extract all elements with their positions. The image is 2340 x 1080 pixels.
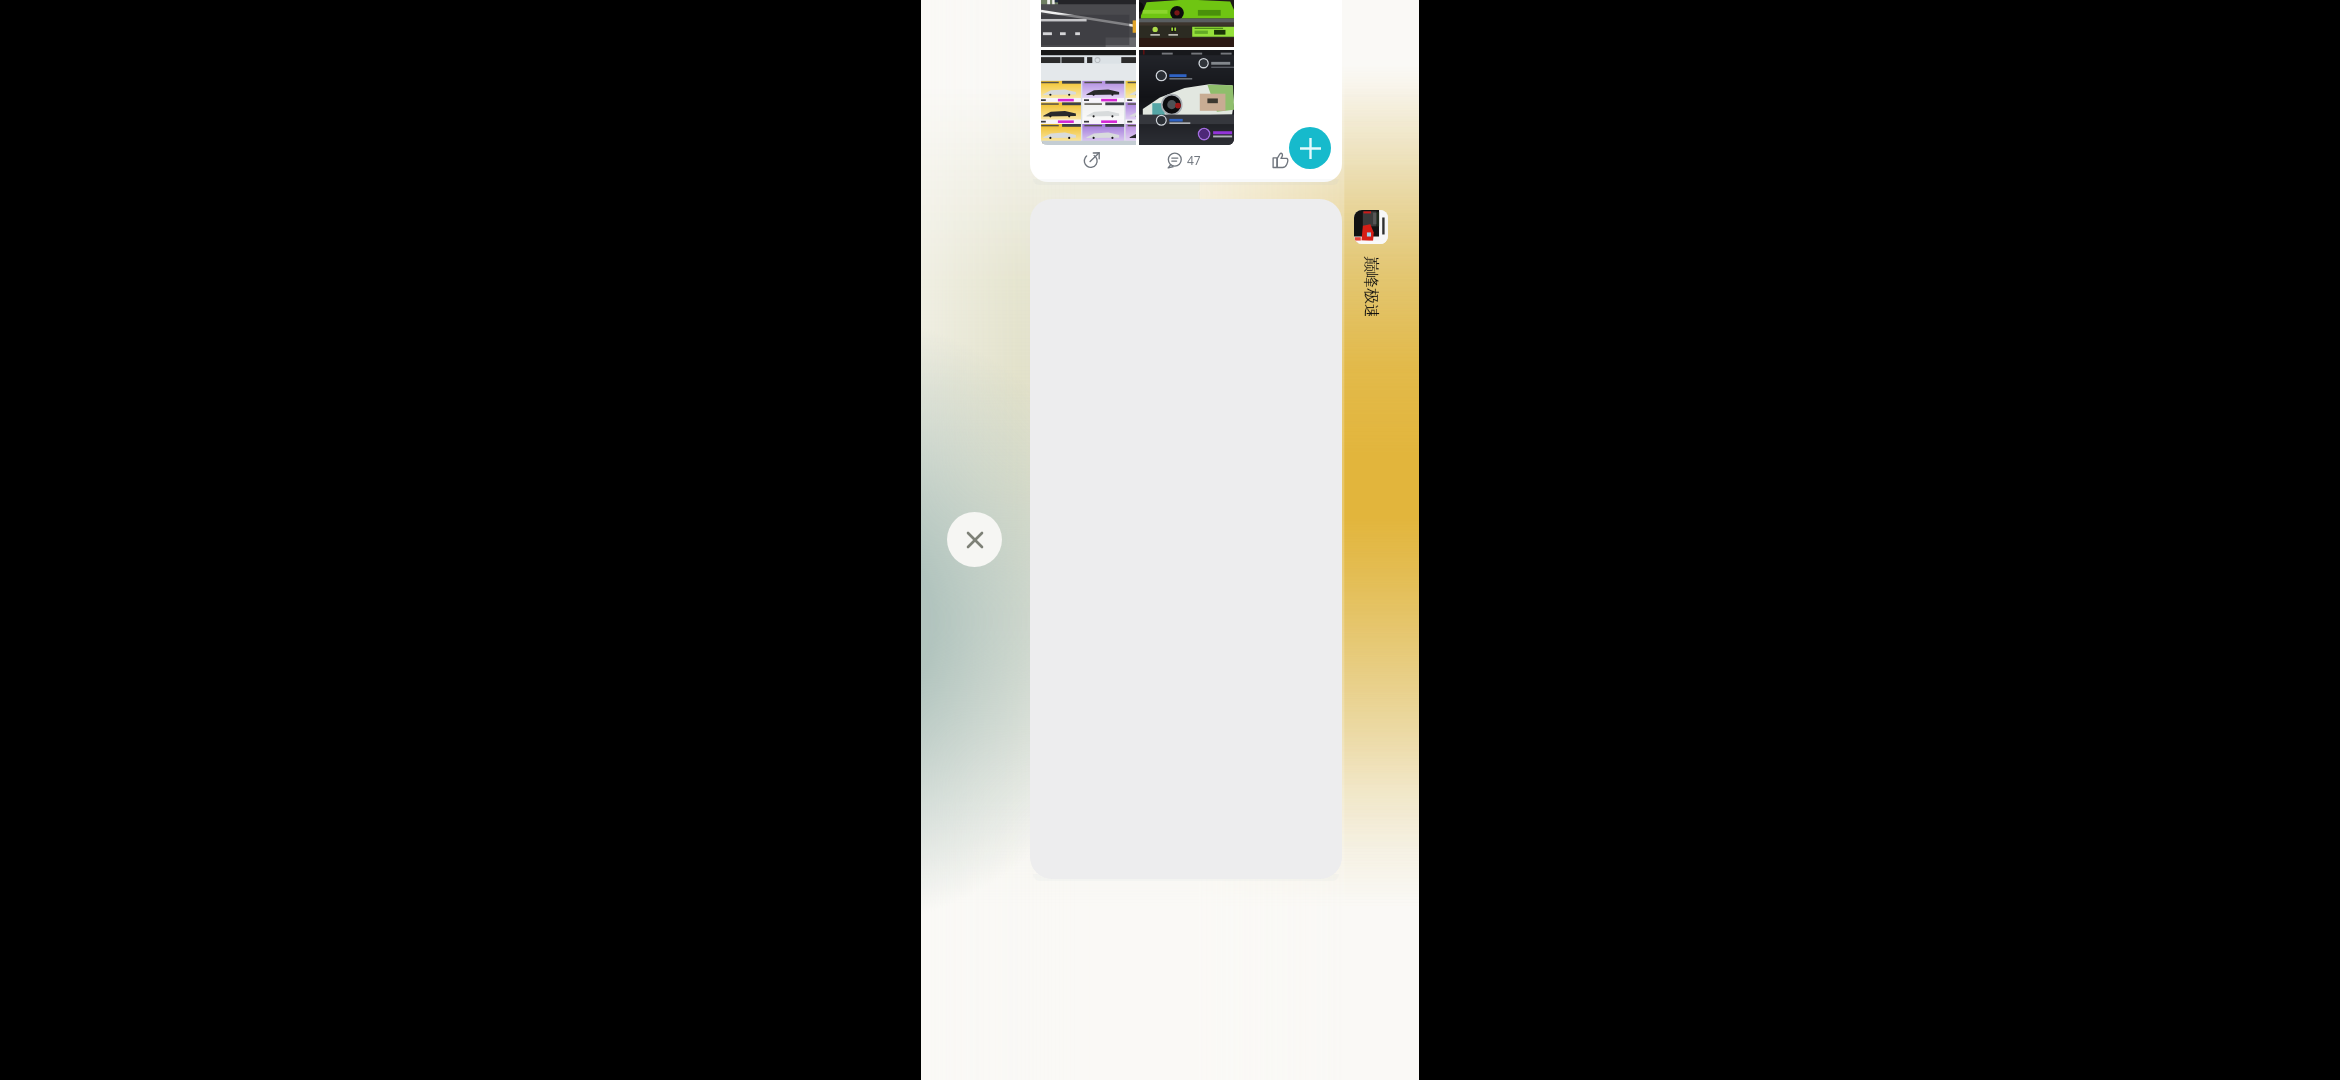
button[interactable]: Comments — [1146, 143, 1222, 177]
staticText: 47 — [1187, 152, 1201, 168]
button[interactable]: 巅峰极速 — [1354, 210, 1388, 244]
button[interactable]: Share — [1054, 143, 1130, 177]
button[interactable]: 巅峰极速 — [1341, 246, 1401, 326]
button[interactable]: Add — [1289, 127, 1331, 169]
button[interactable]: Close — [947, 512, 1002, 567]
button[interactable]: Like — [1249, 143, 1310, 177]
staticText: 巅峰极速 — [1361, 256, 1381, 316]
button[interactable]: Share — [1030, 0, 1342, 182]
